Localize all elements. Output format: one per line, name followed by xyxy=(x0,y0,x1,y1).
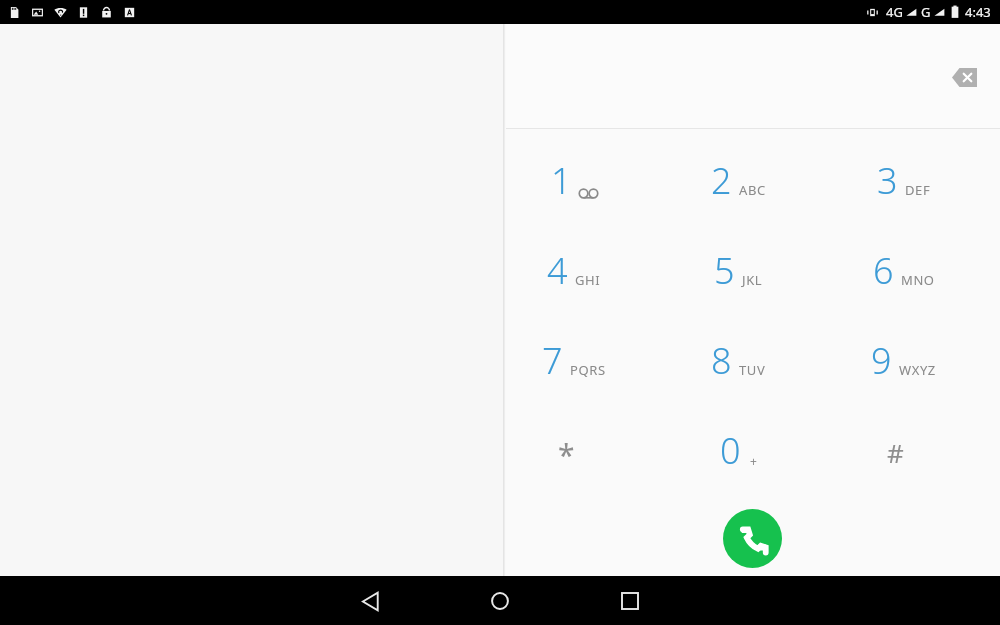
staticText: 1 xyxy=(551,156,572,205)
staticText: JKL xyxy=(742,271,763,289)
button[interactable]: Back xyxy=(346,577,394,625)
staticText: PQRS xyxy=(570,361,606,379)
staticText: 9 xyxy=(871,336,892,385)
staticText: * xyxy=(558,434,575,475)
button[interactable]: 3 xyxy=(835,135,1000,225)
button[interactable]: 8 xyxy=(670,315,835,405)
staticText: 7 xyxy=(542,336,563,385)
staticText: 4G xyxy=(886,3,903,21)
button[interactable]: Recent apps xyxy=(606,577,654,625)
staticText: MNO xyxy=(901,271,935,289)
staticText: 3 xyxy=(877,156,898,205)
button[interactable]: 5 xyxy=(670,225,835,315)
button[interactable]: 0 xyxy=(670,405,835,495)
staticText: GHI xyxy=(575,271,601,289)
staticText: + xyxy=(750,453,757,469)
button[interactable]: * xyxy=(506,405,670,495)
staticText: # xyxy=(887,435,904,470)
button[interactable]: 9 xyxy=(835,315,1000,405)
button[interactable]: Call xyxy=(723,509,782,568)
staticText: G xyxy=(921,3,931,21)
button[interactable]: Home xyxy=(476,577,524,625)
button[interactable]: # xyxy=(835,405,1000,495)
staticText: ABC xyxy=(739,181,766,199)
staticText: 4:43 xyxy=(965,3,991,21)
staticText: 6 xyxy=(873,246,894,295)
staticText: 4 xyxy=(547,246,568,295)
button[interactable]: 1 xyxy=(506,135,670,225)
staticText: DEF xyxy=(905,181,931,199)
staticText: WXYZ xyxy=(899,361,936,379)
staticText: 2 xyxy=(711,156,732,205)
button[interactable]: 4 xyxy=(506,225,670,315)
button[interactable]: Delete xyxy=(942,55,986,99)
staticText: 0 xyxy=(720,426,741,475)
button[interactable]: 7 xyxy=(506,315,670,405)
staticText: 5 xyxy=(714,246,735,295)
button[interactable]: 2 xyxy=(670,135,835,225)
button[interactable]: 6 xyxy=(835,225,1000,315)
staticText: 8 xyxy=(711,336,732,385)
staticText: TUV xyxy=(739,361,766,379)
